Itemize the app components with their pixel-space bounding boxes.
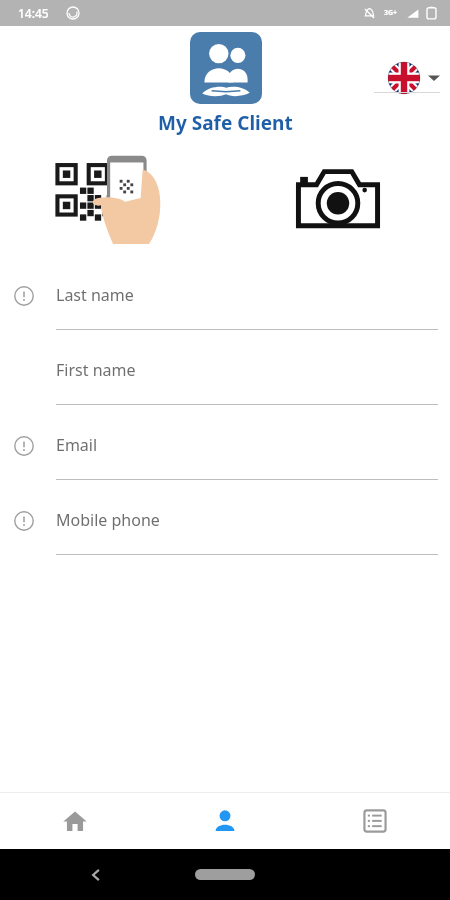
staticText: Mobile phone: [56, 509, 160, 531]
staticText: 14:45: [18, 5, 49, 21]
button[interactable]: Last name: [0, 266, 450, 341]
button[interactable]: App logo: [190, 32, 262, 104]
button[interactable]: Back: [88, 867, 104, 883]
staticText: Email: [56, 434, 98, 456]
button[interactable]: List: [300, 793, 450, 849]
button[interactable]: First name: [0, 341, 450, 416]
button[interactable]: Change language: [384, 58, 444, 98]
button[interactable]: Home: [0, 793, 150, 849]
button[interactable]: Home gesture: [195, 869, 255, 880]
staticText: 3G+: [384, 8, 398, 18]
button[interactable]: Take photo: [225, 148, 450, 248]
button[interactable]: Profile: [150, 793, 300, 849]
staticText: Last name: [56, 284, 134, 306]
staticText: My Safe Client: [158, 110, 293, 136]
button[interactable]: Scan QR code: [0, 148, 225, 248]
button[interactable]: Mobile phone: [0, 491, 450, 566]
staticText: First name: [56, 359, 136, 381]
button[interactable]: Email: [0, 416, 450, 491]
